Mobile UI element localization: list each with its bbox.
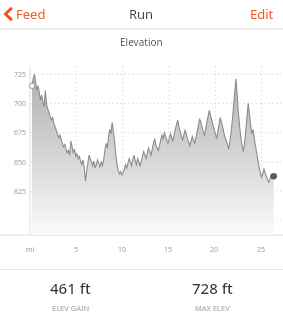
staticText: 650 <box>0 158 26 168</box>
staticText: 15 <box>164 245 173 255</box>
staticText: 725 <box>0 70 26 80</box>
button[interactable]: Back to Feed <box>0 1 54 27</box>
staticText: 5 <box>74 245 79 255</box>
button[interactable]: Edit <box>241 1 283 27</box>
staticText: mi <box>26 245 35 255</box>
staticText: MAX ELEV <box>195 303 230 313</box>
button[interactable]: 728 ft <box>141 270 283 320</box>
staticText: 625 <box>0 187 26 197</box>
staticText: Feed <box>16 5 46 23</box>
staticText: 20 <box>210 245 219 255</box>
staticText: Edit <box>250 5 274 23</box>
other: Back to Feed <box>4 7 13 21</box>
staticText: 700 <box>0 99 26 109</box>
staticText: 675 <box>0 128 26 138</box>
button[interactable]: 461 ft <box>0 270 141 320</box>
staticText: 25 <box>257 245 266 255</box>
staticText: Run <box>129 5 154 23</box>
staticText: 728 ft <box>192 278 233 298</box>
staticText: 10 <box>118 245 127 255</box>
staticText: Elevation <box>120 35 163 49</box>
staticText: ELEV GAIN <box>52 303 90 313</box>
staticText: 461 ft <box>50 278 91 298</box>
